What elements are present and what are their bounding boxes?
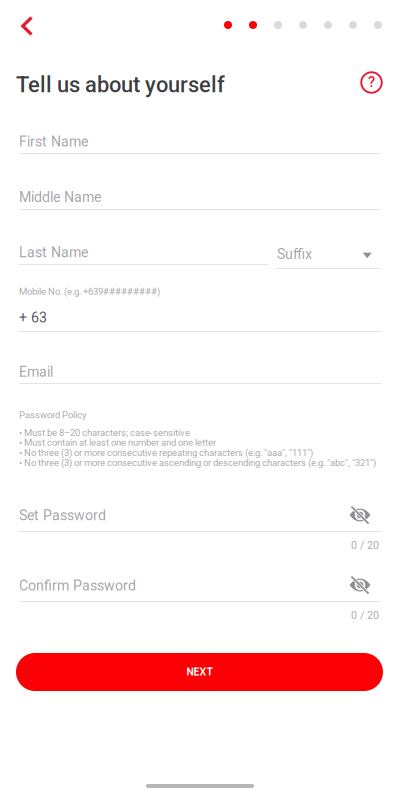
staticText: 0 / 20 bbox=[351, 539, 379, 551]
staticText: + 63 bbox=[19, 309, 47, 326]
staticText: Last Name bbox=[19, 244, 88, 261]
button[interactable]: Back bbox=[7, 6, 47, 46]
button[interactable]: Show confirm password bbox=[344, 570, 376, 600]
staticText: Password Policy bbox=[19, 409, 86, 421]
staticText: • No three (3) or more consecutive repea… bbox=[19, 447, 313, 458]
staticText: • Must contain at least one number and o… bbox=[19, 437, 216, 448]
staticText: • No three (3) or more consecutive ascen… bbox=[19, 457, 376, 468]
staticText: ? bbox=[368, 73, 375, 91]
staticText: Confirm Password bbox=[19, 577, 136, 594]
staticText: Mobile No. (e.g. +639#########) bbox=[19, 286, 160, 297]
staticText: Set Password bbox=[19, 507, 106, 524]
staticText: • Must be 8–20 characters; case-sensitiv… bbox=[19, 427, 190, 438]
staticText: Tell us about yourself bbox=[16, 72, 225, 98]
staticText: NEXT bbox=[186, 666, 212, 678]
button[interactable]: Suffix bbox=[276, 243, 381, 273]
button[interactable]: NEXT bbox=[16, 653, 383, 691]
staticText: Suffix bbox=[277, 246, 312, 263]
button[interactable]: Help bbox=[361, 72, 382, 93]
button[interactable]: Show password bbox=[344, 500, 376, 530]
staticText: Middle Name bbox=[19, 189, 101, 206]
staticText: First Name bbox=[19, 133, 88, 150]
staticText: Email bbox=[19, 364, 53, 380]
staticText: 0 / 20 bbox=[351, 609, 379, 621]
